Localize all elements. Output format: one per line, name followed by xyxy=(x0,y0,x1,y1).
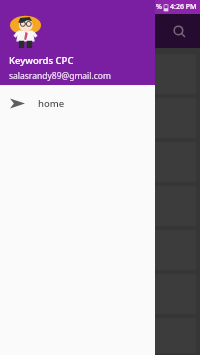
button[interactable] xyxy=(0,0,200,355)
button[interactable] xyxy=(4,54,196,94)
button[interactable]: Search xyxy=(166,18,192,44)
button[interactable] xyxy=(4,98,196,138)
button[interactable]: home xyxy=(0,85,155,121)
staticText: Keywords CPC xyxy=(9,54,74,67)
staticText: salasrandy89@gmail.com xyxy=(9,70,111,82)
staticText: 31% xyxy=(148,2,162,12)
button[interactable] xyxy=(4,318,196,353)
button[interactable] xyxy=(4,274,196,314)
button[interactable] xyxy=(4,186,196,226)
button[interactable] xyxy=(4,142,196,182)
staticText: 4:26 PM xyxy=(170,2,197,12)
staticText: home xyxy=(38,97,65,110)
button[interactable] xyxy=(4,230,196,270)
